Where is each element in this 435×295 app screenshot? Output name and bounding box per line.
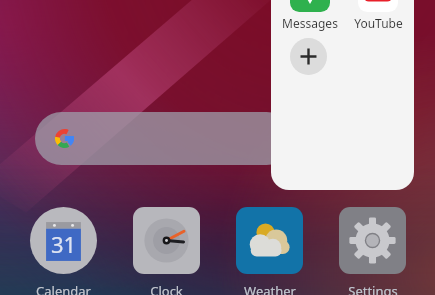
staticText: Messages: [282, 15, 338, 31]
button[interactable]: Messages: [277, 0, 343, 31]
button[interactable]: Add: [290, 38, 327, 75]
button[interactable]: YouTube: [345, 0, 411, 31]
staticText: Settings: [348, 282, 398, 295]
button[interactable]: Weather: [236, 207, 303, 295]
staticText: Calendar: [36, 282, 91, 295]
staticText: 31: [51, 229, 77, 259]
staticText: YouTube: [354, 15, 403, 31]
staticText: Clock: [150, 282, 183, 295]
button[interactable]: Clock: [133, 207, 200, 295]
staticText: Weather: [244, 282, 296, 295]
button[interactable]: Settings: [339, 207, 406, 295]
button[interactable]: Google search: [35, 112, 293, 165]
button[interactable]: 31: [30, 207, 97, 295]
